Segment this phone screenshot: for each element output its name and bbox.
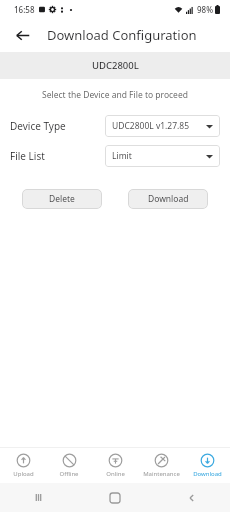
button[interactable]: Back (8, 21, 36, 49)
button[interactable]: UDC2800L v1.27.85 (105, 115, 220, 137)
staticText: UDC2800L v1.27.85 (112, 120, 190, 132)
staticText: Maintenance (143, 470, 180, 478)
staticText: Limit (112, 150, 132, 162)
staticText: File List (10, 149, 45, 163)
button[interactable]: Offline (46, 450, 92, 481)
staticText: Upload (13, 470, 34, 478)
button[interactable]: Delete (22, 189, 102, 209)
button[interactable]: Back (153, 483, 230, 512)
staticText: 98% (197, 4, 213, 15)
staticText: Delete (49, 193, 75, 205)
button[interactable]: Home (76, 483, 153, 512)
staticText: Download Configuration (47, 26, 197, 44)
staticText: Device Type (10, 119, 66, 133)
button[interactable]: Limit (105, 145, 220, 167)
staticText: Select the Device and File to proceed (0, 89, 230, 101)
button[interactable]: Recent apps (0, 483, 76, 512)
button[interactable]: Upload (0, 450, 46, 481)
button[interactable]: Online (92, 450, 138, 481)
staticText: Download (148, 193, 189, 205)
button[interactable]: Download (184, 450, 230, 481)
staticText: UDC2800L (92, 59, 139, 72)
staticText: 16:58 (14, 4, 35, 15)
button[interactable]: Download (128, 189, 208, 209)
staticText: Online (106, 470, 125, 478)
staticText: Download (193, 470, 222, 478)
button[interactable]: Maintenance (138, 450, 184, 481)
staticText: Offline (59, 470, 79, 478)
